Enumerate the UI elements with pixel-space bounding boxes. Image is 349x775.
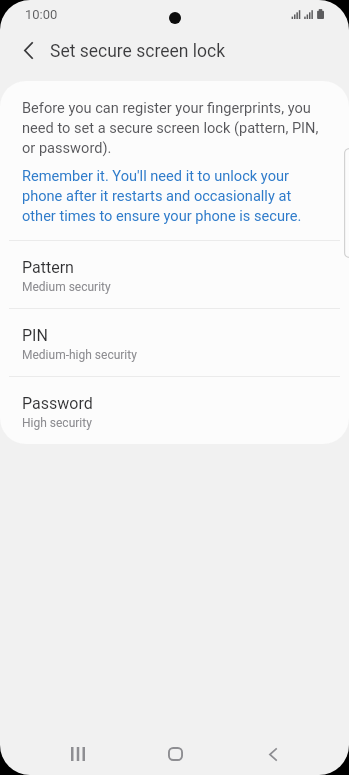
button[interactable]: Navigate up	[6, 28, 51, 72]
staticText: Password	[22, 394, 93, 413]
staticText: 10:00	[25, 7, 58, 22]
button[interactable]: Password	[0, 377, 349, 444]
staticText: PIN	[22, 326, 48, 345]
staticText: Medium-high security	[22, 348, 137, 362]
staticText: Before you can register your fingerprint…	[22, 97, 323, 157]
button[interactable]: Pattern	[0, 241, 349, 308]
staticText: Medium security	[22, 280, 111, 294]
staticText: High security	[22, 416, 92, 430]
staticText: Set secure screen lock	[50, 41, 226, 62]
button[interactable]: Home	[153, 732, 197, 775]
staticText: Remember it. You'll need it to unlock yo…	[22, 165, 323, 225]
button[interactable]: PIN	[0, 309, 349, 376]
staticText: Pattern	[22, 258, 74, 277]
button[interactable]: Recent apps	[56, 732, 100, 775]
button[interactable]: Back	[251, 732, 295, 775]
